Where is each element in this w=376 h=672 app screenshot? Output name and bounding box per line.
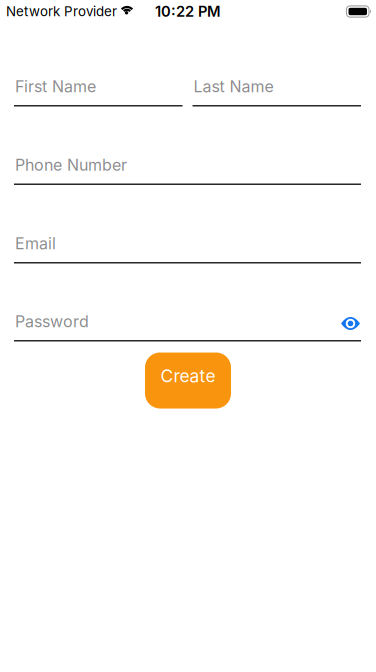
staticText: Network Provider (6, 4, 117, 19)
staticText: Phone Number (15, 156, 127, 174)
staticText: 10:22 PM (155, 3, 221, 20)
button[interactable]: Create (145, 352, 231, 408)
staticText: Create (160, 366, 215, 386)
staticText: Password (15, 312, 89, 331)
staticText: Last Name (193, 77, 273, 96)
staticText: First Name (15, 77, 96, 96)
staticText: Email (15, 234, 56, 253)
button[interactable]: Show password (341, 317, 360, 330)
